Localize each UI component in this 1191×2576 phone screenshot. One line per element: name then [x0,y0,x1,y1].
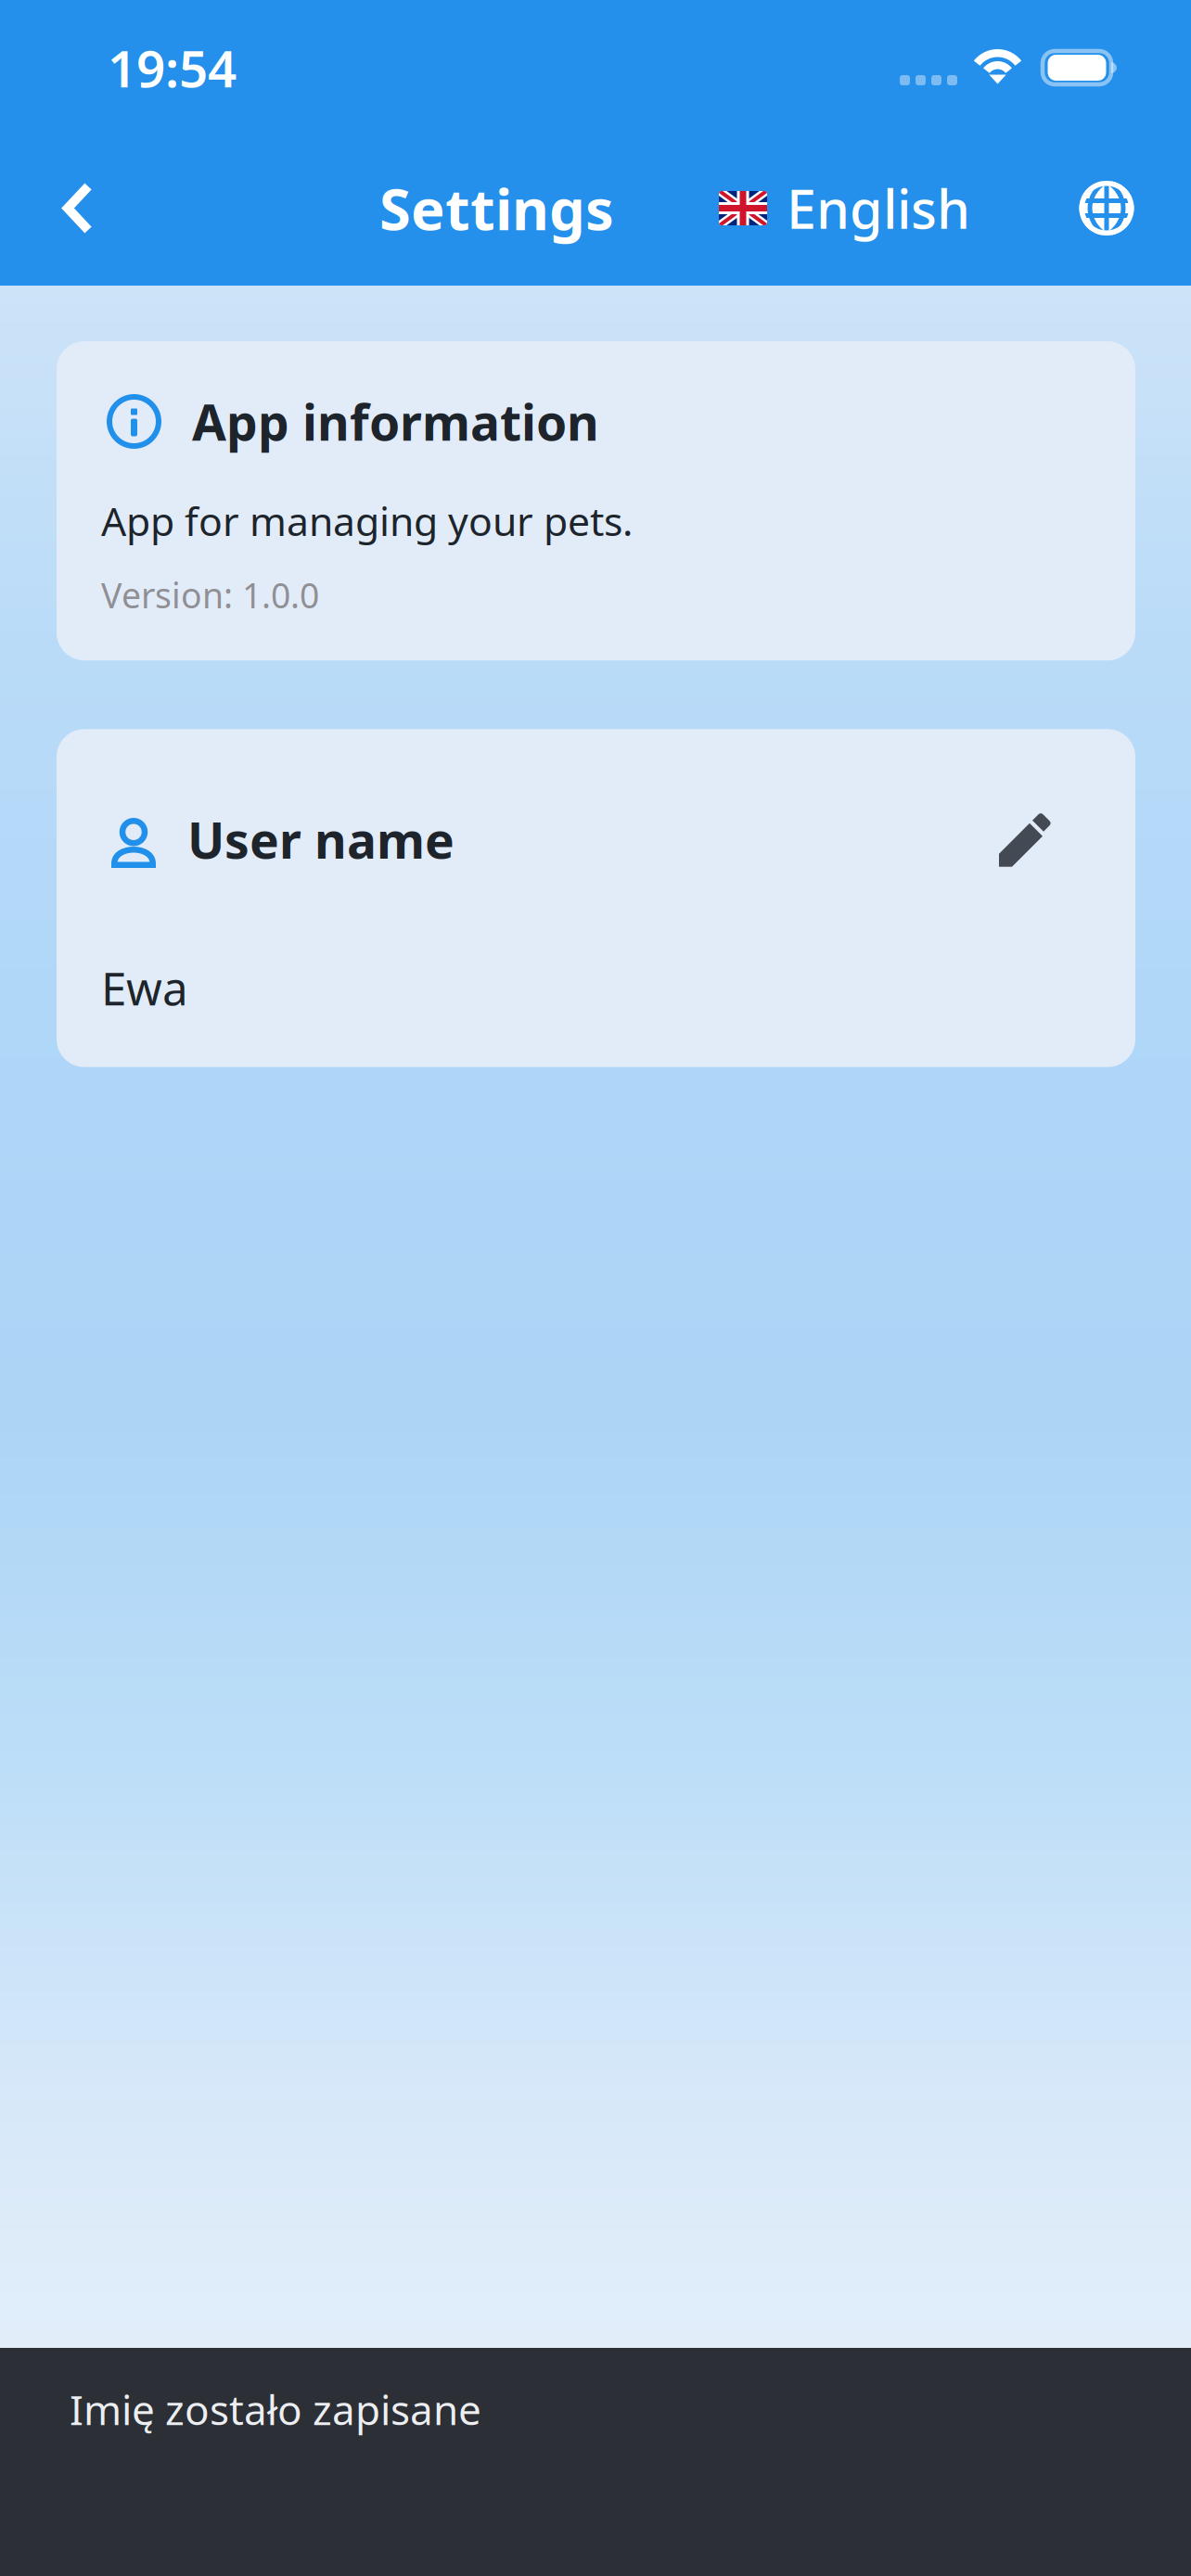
button[interactable]: Back [32,148,124,268]
button[interactable]: English [719,148,970,268]
staticText: 19:54 [108,34,237,101]
staticText: Imię zostało zapisane [70,2382,481,2436]
staticText: Version: 1.0.0 [101,572,319,618]
button[interactable]: Change language [1079,148,1134,268]
staticText: Settings [379,170,614,246]
staticText: English [787,173,970,243]
staticText: Ewa [101,957,188,1018]
staticText: App information [192,389,599,454]
button[interactable]: Edit user name [996,812,1049,867]
staticText: App for managing your pets. [101,494,633,547]
staticText: User name [187,807,455,872]
